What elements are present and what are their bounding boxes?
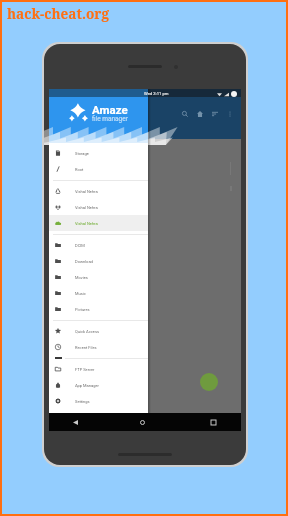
button[interactable]: FTP Server (49, 361, 148, 377)
button[interactable]: Back (68, 413, 83, 431)
staticText: Download (75, 259, 93, 264)
staticText: Quick Access (75, 329, 100, 334)
button[interactable]: Vishal Nehra (49, 183, 148, 199)
button[interactable]: Pictures (49, 301, 148, 317)
button[interactable]: Recents (206, 413, 221, 431)
staticText: Wed 3:11 pm (144, 91, 169, 96)
button[interactable]: Vishal Nehra (49, 199, 148, 215)
staticText: Vishal Nehra (75, 189, 98, 194)
staticText: Pictures (75, 307, 90, 312)
staticText: App Manager (75, 383, 99, 388)
button[interactable]: Home (135, 413, 150, 431)
button[interactable]: Settings (49, 393, 148, 409)
button[interactable]: More options (222, 106, 237, 121)
button[interactable]: Vishal Nehra (49, 215, 148, 231)
button[interactable]: Quick Access (49, 323, 148, 339)
button[interactable]: Home (192, 106, 207, 121)
button[interactable]: Root (49, 161, 148, 177)
button[interactable]: Search (177, 106, 192, 121)
staticText: DCIM (75, 243, 85, 248)
staticText: Amaze (92, 103, 128, 116)
button[interactable]: Music (49, 285, 148, 301)
staticText: Recent Files (75, 345, 97, 350)
staticText: file manager (92, 115, 128, 123)
button[interactable]: Download (49, 253, 148, 269)
staticText: Vishal Nehra (75, 205, 98, 210)
button[interactable]: App Manager (49, 377, 148, 393)
button[interactable]: Sort (207, 106, 222, 121)
staticText: FTP Server (75, 367, 95, 372)
staticText: Root (75, 167, 84, 172)
staticText: Settings (75, 399, 90, 404)
staticText: Movies (75, 275, 88, 280)
staticText: Storage (75, 151, 89, 156)
staticText: Vishal Nehra (75, 221, 98, 226)
staticText: Music (75, 291, 86, 296)
button[interactable]: New (200, 373, 218, 391)
staticText: hack-cheat.org (7, 4, 109, 23)
button[interactable]: DCIM (49, 237, 148, 253)
button[interactable]: Storage (49, 145, 148, 161)
button[interactable]: Movies (49, 269, 148, 285)
button[interactable]: Recent Files (49, 339, 148, 355)
